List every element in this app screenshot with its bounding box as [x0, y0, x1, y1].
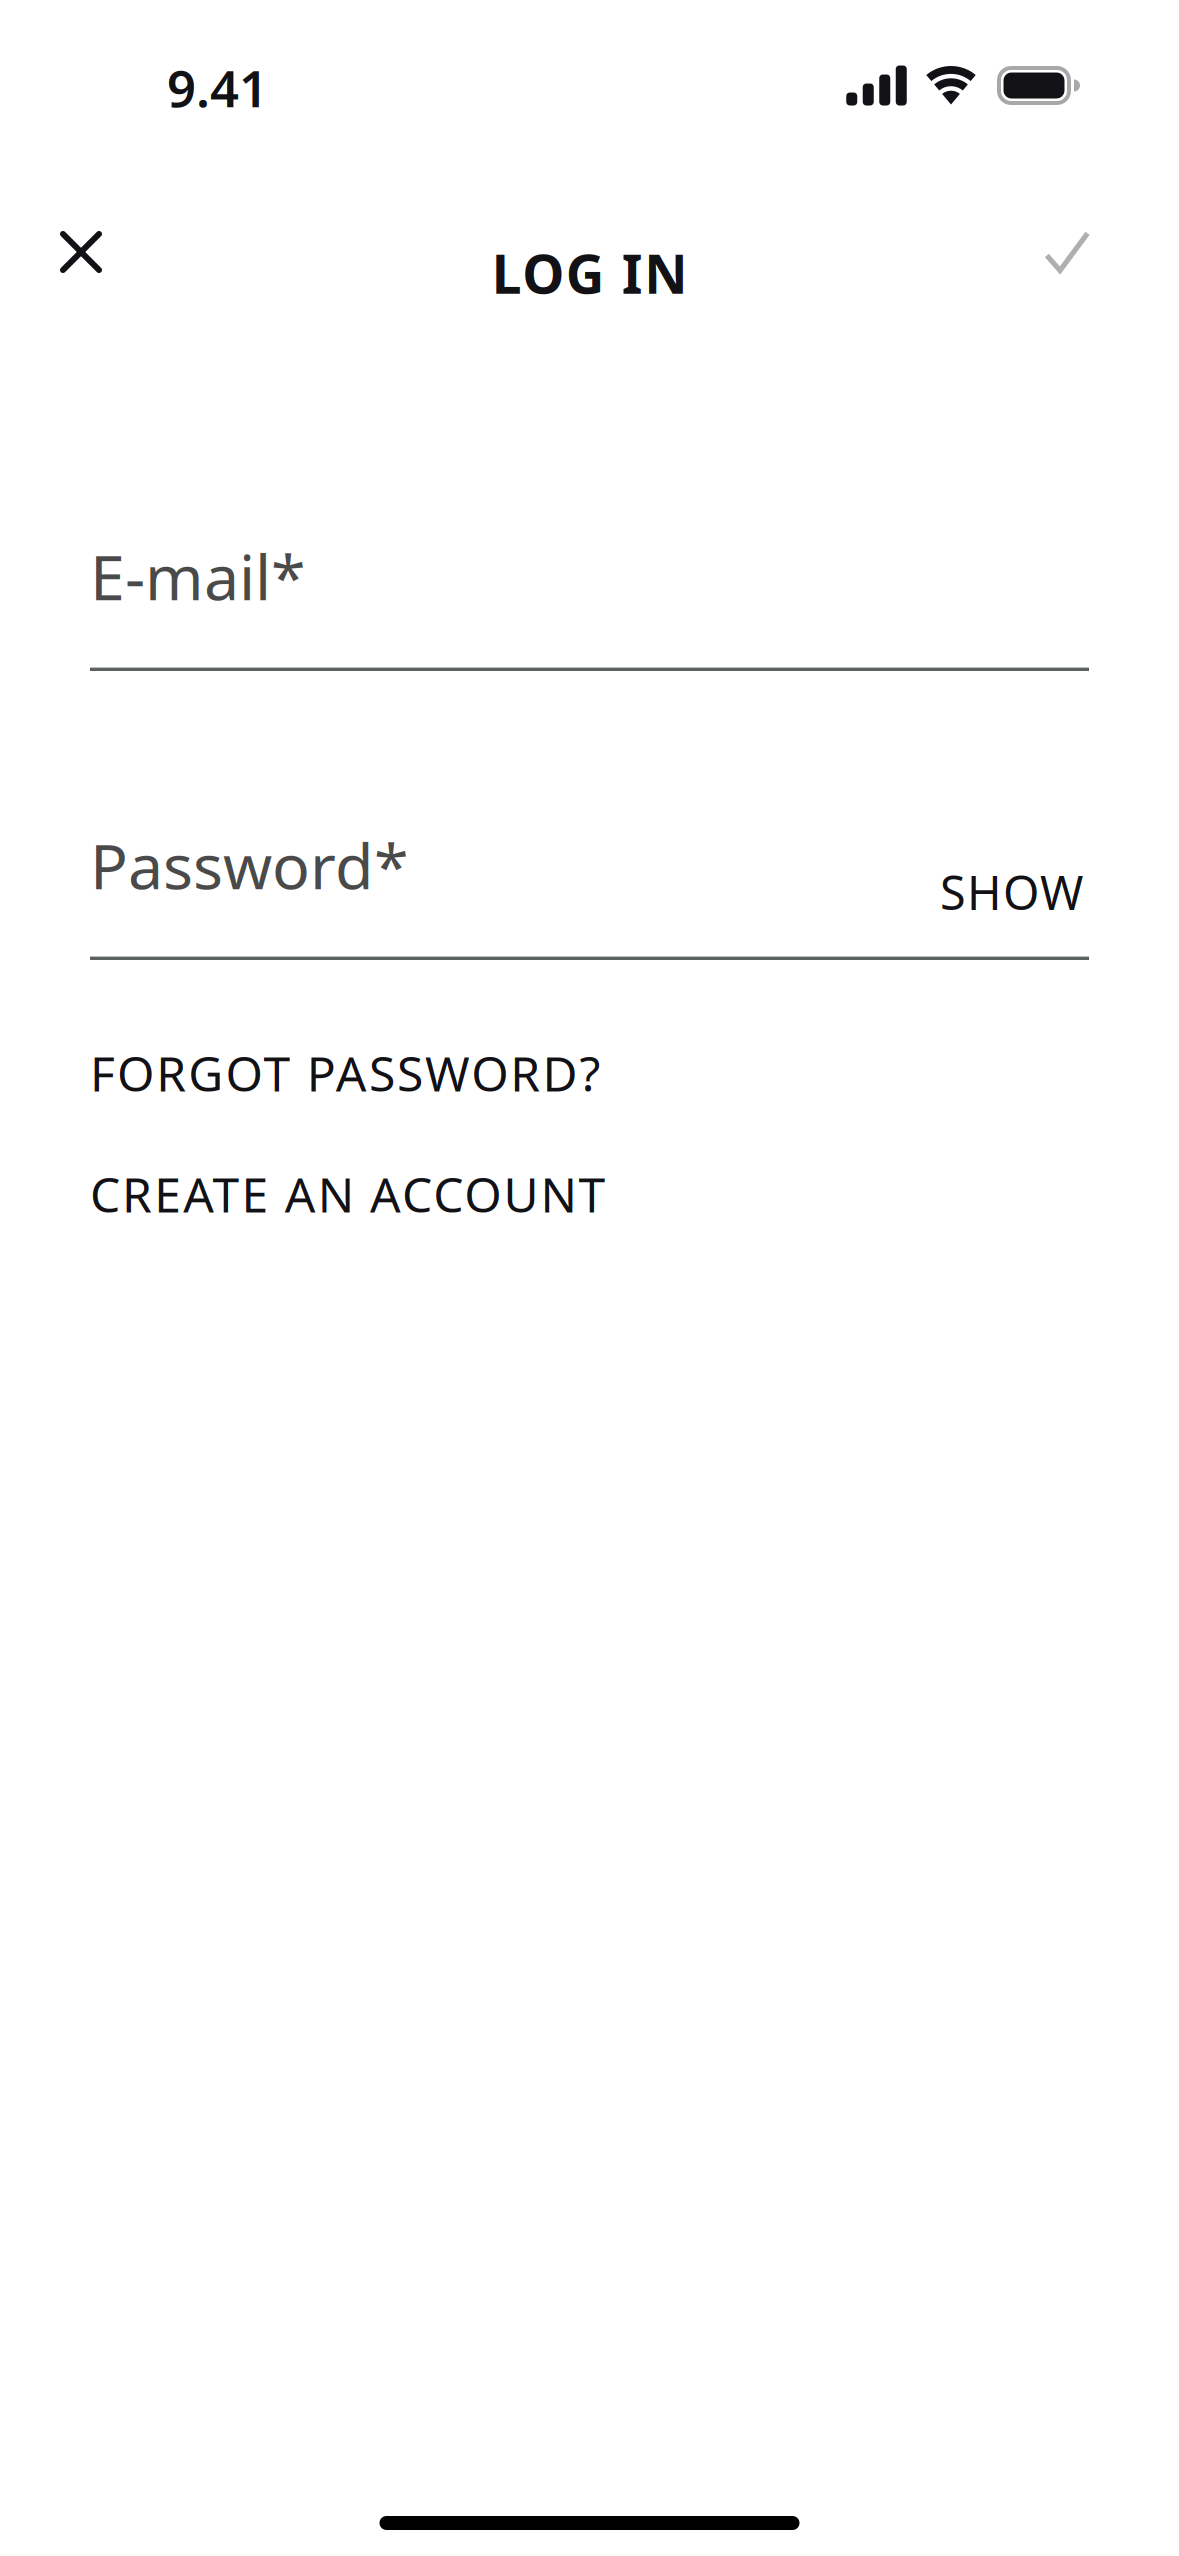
button[interactable]: Submit: [1012, 197, 1122, 307]
staticText: SHOW: [940, 861, 1083, 923]
button[interactable]: E-mail*: [90, 541, 1089, 671]
staticText: Password*: [90, 823, 409, 907]
button[interactable]: Close: [26, 197, 136, 307]
button[interactable]: Password*: [90, 830, 1089, 960]
staticText: E-mail*: [90, 534, 306, 618]
button[interactable]: SHOW: [933, 857, 1083, 927]
button[interactable]: CREATE AN ACCOUNT: [90, 1159, 606, 1229]
staticText: FORGOT PASSWORD?: [90, 1041, 600, 1105]
staticText: 9.41: [167, 54, 268, 121]
button[interactable]: FORGOT PASSWORD?: [90, 1038, 600, 1108]
staticText: LOG IN: [492, 238, 687, 308]
staticText: CREATE AN ACCOUNT: [90, 1162, 606, 1226]
